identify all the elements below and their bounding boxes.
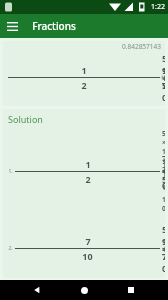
button[interactable]: 0.842857143 [3,41,165,106]
staticText: Fractions [32,19,76,33]
staticText: 7 [85,235,91,247]
staticText: 1. [8,168,13,175]
button[interactable]: Home [74,280,94,300]
staticText: 2 [85,173,91,185]
staticText: Solution [8,113,43,125]
button[interactable]: Back [27,280,47,300]
staticText: 2. [8,245,13,252]
staticText: 10 [82,250,93,262]
staticText: 1 [81,64,87,76]
staticText: 1:22 [151,2,165,12]
staticText: 0.842857143 [122,42,161,51]
staticText: 2 [81,79,87,91]
staticText: 1 [85,158,91,170]
button[interactable]: Recent apps [121,280,141,300]
button[interactable]: Open navigation drawer [0,14,24,38]
